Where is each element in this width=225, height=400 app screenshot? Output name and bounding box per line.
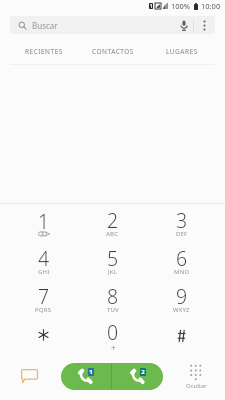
- staticText: 4: [38, 245, 50, 272]
- staticText: +: [111, 342, 116, 353]
- staticText: DEF: [176, 230, 188, 238]
- staticText: Ocultar: [186, 382, 207, 390]
- staticText: 7: [38, 283, 50, 310]
- button[interactable]: Buscar: [10, 16, 174, 34]
- staticText: 2: [141, 368, 145, 376]
- staticText: RECIENTES: [25, 47, 63, 56]
- button[interactable]: Send message: [12, 362, 46, 390]
- button[interactable]: 6: [147, 243, 216, 281]
- button[interactable]: [147, 319, 216, 357]
- button[interactable]: RECIENTES: [9, 38, 78, 64]
- staticText: 3: [176, 207, 188, 234]
- staticText: TUV: [107, 306, 119, 314]
- button[interactable]: Voice search: [174, 16, 193, 34]
- button[interactable]: 3: [147, 205, 216, 243]
- staticText: Buscar: [32, 20, 58, 31]
- staticText: PQRS: [35, 306, 52, 314]
- button[interactable]: [9, 319, 78, 357]
- button[interactable]: Ocultar: [177, 361, 215, 393]
- button[interactable]: 9: [147, 281, 216, 319]
- button[interactable]: 4: [9, 243, 78, 281]
- button[interactable]: 0: [78, 319, 147, 357]
- staticText: 0: [107, 319, 119, 346]
- staticText: 1: [150, 3, 153, 9]
- button[interactable]: LUGARES: [147, 38, 216, 64]
- staticText: 8: [107, 283, 119, 310]
- staticText: 5: [107, 245, 119, 272]
- button[interactable]: Call with SIM 2: [112, 363, 163, 390]
- button[interactable]: Call with SIM 1: [61, 363, 111, 390]
- button[interactable]: 2: [78, 205, 147, 243]
- staticText: WXYZ: [173, 306, 190, 314]
- staticText: 9: [176, 283, 188, 310]
- staticText: 1: [89, 368, 93, 376]
- staticText: 2: [107, 207, 119, 234]
- button[interactable]: CONTACTOS: [78, 38, 147, 64]
- staticText: MNO: [174, 268, 190, 276]
- staticText: CONTACTOS: [92, 47, 134, 56]
- staticText: 1: [38, 208, 50, 235]
- button[interactable]: 1: [9, 205, 78, 243]
- button[interactable]: More options: [194, 16, 215, 34]
- staticText: JKL: [108, 268, 118, 276]
- staticText: ABC: [106, 230, 119, 238]
- button[interactable]: 7: [9, 281, 78, 319]
- staticText: GHI: [38, 268, 50, 276]
- staticText: LUGARES: [166, 47, 198, 56]
- button[interactable]: 5: [78, 243, 147, 281]
- button[interactable]: 8: [78, 281, 147, 319]
- staticText: 6: [176, 245, 188, 272]
- staticText: 10:00: [201, 1, 221, 11]
- staticText: 100%: [171, 1, 191, 11]
